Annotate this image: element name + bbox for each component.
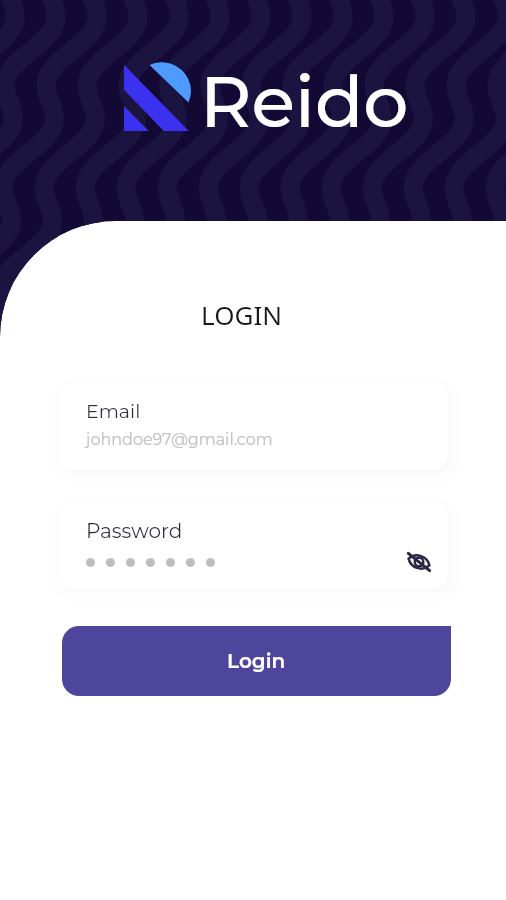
button[interactable]: Email <box>59 381 448 470</box>
button[interactable]: Login <box>62 626 451 696</box>
staticText: Reido <box>200 58 409 145</box>
staticText: Login <box>227 649 286 673</box>
button[interactable]: Password <box>59 500 448 589</box>
button[interactable]: Show password <box>400 543 438 581</box>
staticText: johndoe97@gmail.com <box>86 430 273 450</box>
staticText: Password <box>86 519 183 543</box>
staticText: Email <box>86 400 141 423</box>
staticText: LOGIN <box>201 297 282 332</box>
